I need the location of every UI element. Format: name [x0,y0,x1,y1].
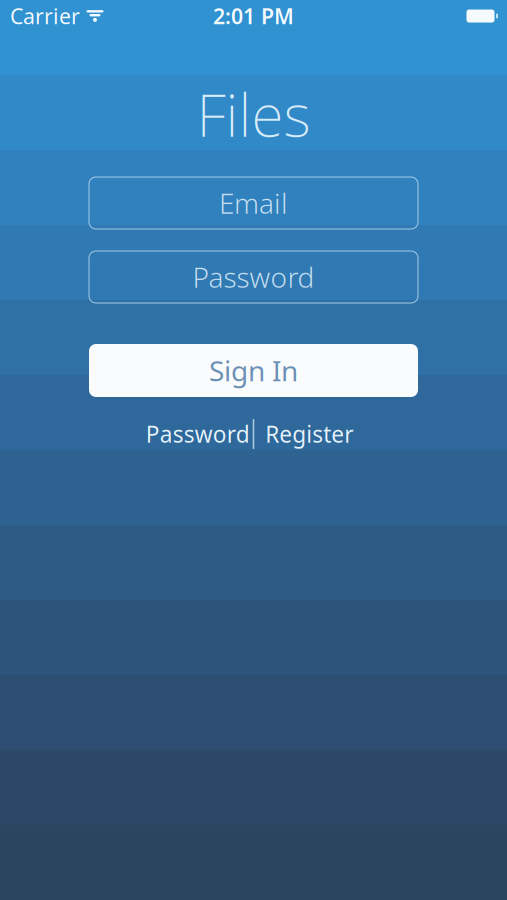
staticText: Email [219,184,288,222]
staticText: Password [192,258,314,296]
staticText: Register [265,419,353,449]
button[interactable]: Email [89,177,418,229]
button[interactable]: Password [143,419,253,449]
staticText: Password [146,419,250,449]
staticText: Sign In [209,352,298,389]
staticText: Files [196,75,310,153]
staticText: Carrier [10,2,80,30]
button[interactable]: Password [89,251,418,303]
staticText: 2:01 PM [213,2,294,30]
button[interactable]: Sign In [89,344,418,397]
button[interactable]: Register [254,419,364,449]
